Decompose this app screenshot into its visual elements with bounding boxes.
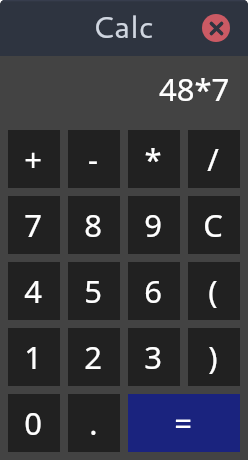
staticText: 9 (144, 204, 162, 246)
button[interactable]: 2 (68, 328, 120, 386)
staticText: 1 (24, 336, 42, 378)
button[interactable]: = (128, 394, 240, 452)
button[interactable]: + (8, 130, 60, 188)
button[interactable]: / (188, 130, 240, 188)
staticText: 8 (84, 204, 102, 246)
staticText: - (88, 138, 98, 180)
staticText: 3 (144, 336, 162, 378)
button[interactable]: - (68, 130, 120, 188)
staticText: 7 (24, 204, 42, 246)
staticText: + (24, 138, 42, 180)
staticText: = (174, 402, 192, 444)
button[interactable]: 5 (68, 262, 120, 320)
button[interactable]: 3 (128, 328, 180, 386)
button[interactable]: 6 (128, 262, 180, 320)
staticText: 2 (84, 336, 102, 378)
button[interactable]: ( (188, 262, 240, 320)
staticText: / (207, 138, 219, 180)
staticText: 6 (144, 270, 162, 312)
button[interactable]: Close window (202, 14, 230, 42)
button[interactable]: . (68, 394, 120, 452)
button[interactable]: 7 (8, 196, 60, 254)
button[interactable]: * (128, 130, 180, 188)
staticText: ( (208, 270, 218, 312)
button[interactable]: 0 (8, 394, 60, 452)
staticText: C (203, 204, 223, 246)
staticText: . (89, 402, 98, 444)
staticText: ) (208, 336, 218, 378)
staticText: 5 (84, 270, 102, 312)
button[interactable]: 9 (128, 196, 180, 254)
button[interactable]: 1 (8, 328, 60, 386)
button[interactable]: 48*7 (0, 56, 248, 130)
staticText: 48*7 (159, 68, 230, 110)
button[interactable]: C (188, 196, 240, 254)
staticText: Calc (92, 4, 154, 48)
button[interactable]: ) (188, 328, 240, 386)
button[interactable]: 8 (68, 196, 120, 254)
staticText: 0 (24, 402, 42, 444)
staticText: * (144, 138, 162, 180)
button[interactable]: 4 (8, 262, 60, 320)
staticText: 4 (24, 270, 42, 312)
